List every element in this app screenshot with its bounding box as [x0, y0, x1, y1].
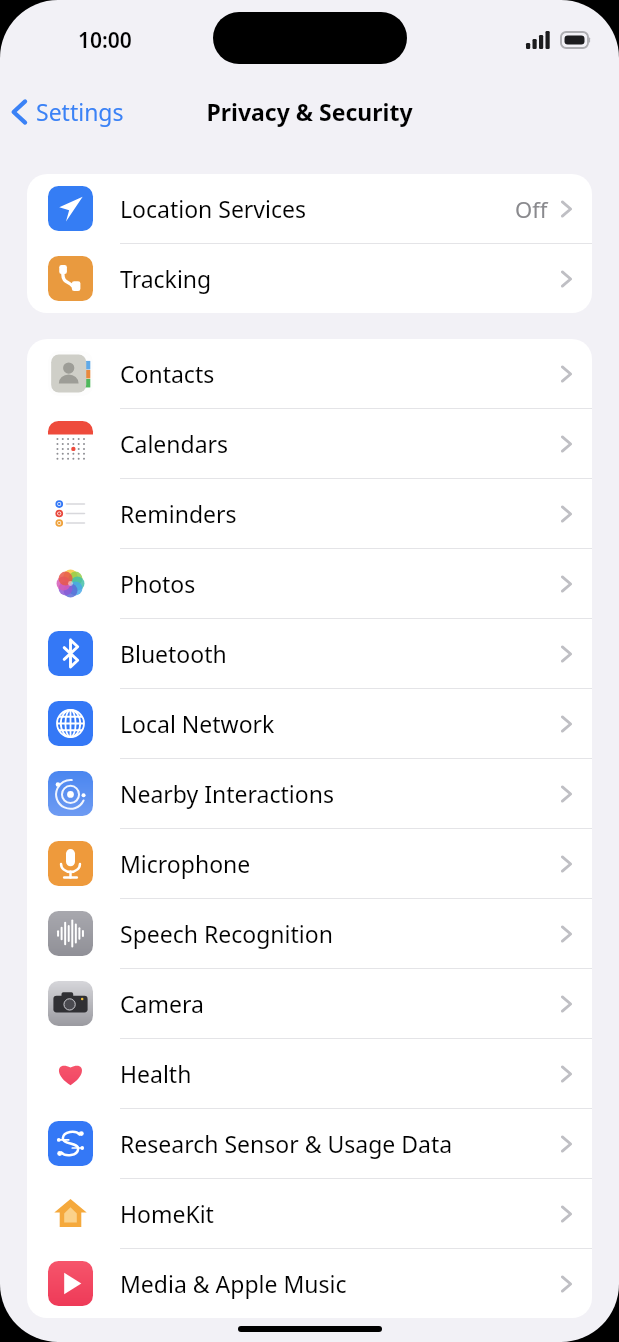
staticText: Speech Recognition	[120, 918, 560, 949]
staticText: Privacy & Security	[206, 96, 413, 127]
staticText: Location Services	[120, 193, 515, 224]
staticText: Nearby Interactions	[120, 778, 560, 809]
button[interactable]: Photos	[27, 549, 592, 619]
button[interactable]: Nearby Interactions	[27, 759, 592, 829]
button[interactable]: Calendars	[27, 409, 592, 479]
staticText: Photos	[120, 568, 560, 599]
button[interactable]: Contacts	[27, 339, 592, 409]
button[interactable]: Speech Recognition	[27, 899, 592, 969]
other: Location Services	[48, 186, 93, 231]
button[interactable]: Bluetooth	[27, 619, 592, 689]
staticText: Health	[120, 1058, 560, 1089]
button[interactable]: Health	[27, 1039, 592, 1109]
staticText: Settings	[36, 96, 124, 127]
staticText: Reminders	[120, 498, 560, 529]
staticText: Off	[515, 194, 548, 224]
button[interactable]: Reminders	[27, 479, 592, 549]
button[interactable]: Location Services	[27, 174, 592, 244]
staticText: Bluetooth	[120, 638, 560, 669]
button[interactable]: Camera	[27, 969, 592, 1039]
staticText: Camera	[120, 988, 560, 1019]
button[interactable]: Settings	[0, 90, 134, 133]
button[interactable]: Microphone	[27, 829, 592, 899]
button[interactable]: Research Sensor & Usage Data	[27, 1109, 592, 1179]
staticText: Calendars	[120, 428, 560, 459]
staticText: 10:00	[78, 26, 132, 55]
staticText: Research Sensor & Usage Data	[120, 1128, 560, 1159]
staticText: Microphone	[120, 848, 560, 879]
button[interactable]: Tracking	[27, 244, 592, 313]
staticText: HomeKit	[120, 1198, 560, 1229]
staticText: Local Network	[120, 708, 560, 739]
staticText: Contacts	[120, 358, 560, 389]
staticText: Tracking	[120, 263, 560, 294]
button[interactable]: HomeKit	[27, 1179, 592, 1249]
button[interactable]: Local Network	[27, 689, 592, 759]
staticText: Media & Apple Music	[120, 1268, 560, 1299]
button[interactable]: Media & Apple Music	[27, 1249, 592, 1318]
